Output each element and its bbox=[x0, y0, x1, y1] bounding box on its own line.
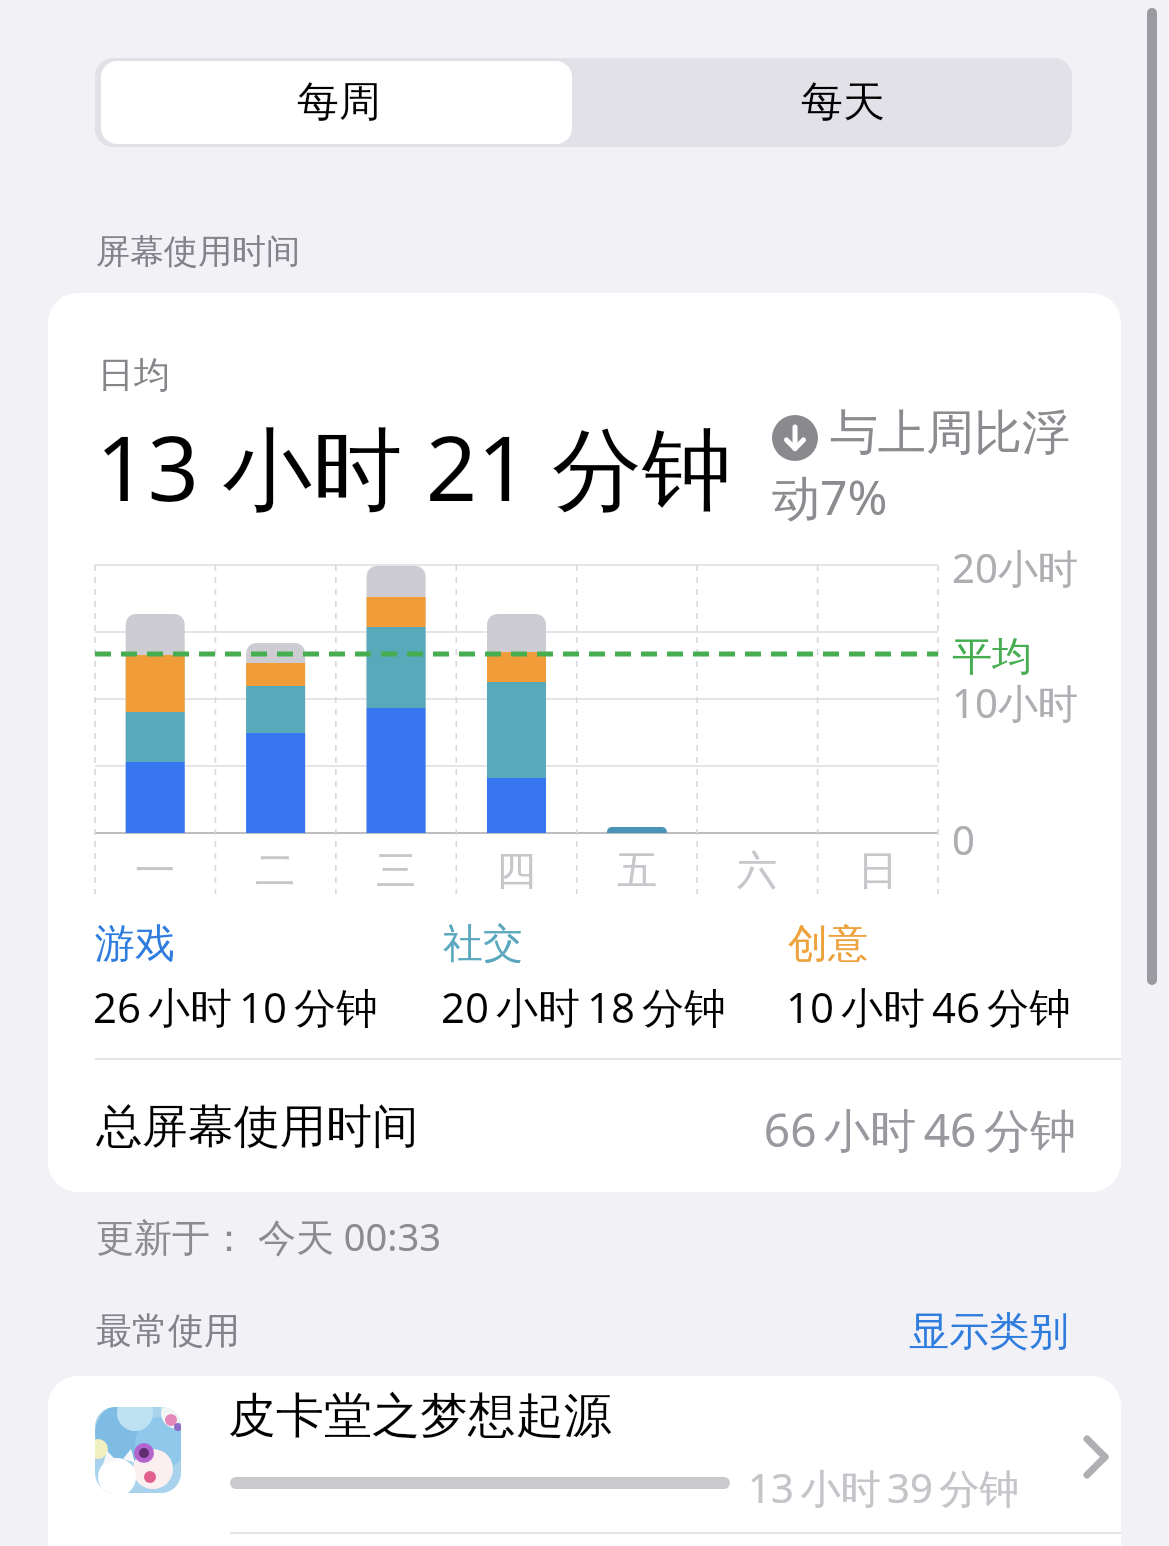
staticText: 每周 bbox=[297, 76, 381, 129]
staticText: 20小时 bbox=[952, 540, 1078, 595]
staticText: 26 小时 10 分钟 bbox=[93, 978, 379, 1035]
button[interactable]: 显示类别 bbox=[869, 1300, 1069, 1358]
staticText: 动7% bbox=[772, 464, 888, 530]
staticText: 社交 bbox=[443, 918, 523, 968]
staticText: 平均 bbox=[952, 631, 1032, 681]
staticText: 日 bbox=[858, 845, 898, 895]
staticText: 日均 bbox=[98, 352, 170, 397]
staticText: 屏幕使用时间 bbox=[96, 230, 300, 273]
staticText: 10 小时 46 分钟 bbox=[786, 978, 1072, 1035]
button[interactable] bbox=[48, 1060, 1121, 1192]
staticText: 一 bbox=[135, 845, 175, 895]
staticText: 13 小时 39 分钟 bbox=[748, 1460, 1020, 1515]
staticText: 每天 bbox=[801, 76, 885, 129]
staticText: 66 小时 46 分钟 bbox=[763, 1098, 1076, 1161]
staticText: 13 小时 21 分钟 bbox=[96, 405, 733, 528]
staticText: 三 bbox=[376, 845, 416, 895]
staticText: 0 bbox=[952, 812, 975, 866]
staticText: 显示类别 bbox=[909, 1306, 1069, 1356]
button[interactable] bbox=[48, 1376, 1121, 1534]
staticText: 10小时 bbox=[952, 675, 1078, 730]
staticText: 五 bbox=[617, 845, 657, 895]
staticText: 六 bbox=[737, 845, 777, 895]
staticText: 二 bbox=[255, 845, 295, 895]
staticText: 总屏幕使用时间 bbox=[96, 1098, 418, 1156]
staticText: 创意 bbox=[788, 918, 868, 968]
button[interactable]: 每周 bbox=[95, 58, 583, 147]
button[interactable]: 每天 bbox=[583, 58, 1072, 147]
staticText: 皮卡堂之梦想起源 bbox=[228, 1386, 612, 1446]
staticText: 20 小时 18 分钟 bbox=[441, 978, 727, 1035]
staticText: 与上周比浮 bbox=[830, 403, 1070, 463]
staticText: 最常使用 bbox=[96, 1308, 240, 1353]
staticText: 四 bbox=[496, 845, 536, 895]
staticText: 游戏 bbox=[95, 918, 175, 968]
staticText: 更新于： 今天 00:33 bbox=[96, 1210, 441, 1262]
